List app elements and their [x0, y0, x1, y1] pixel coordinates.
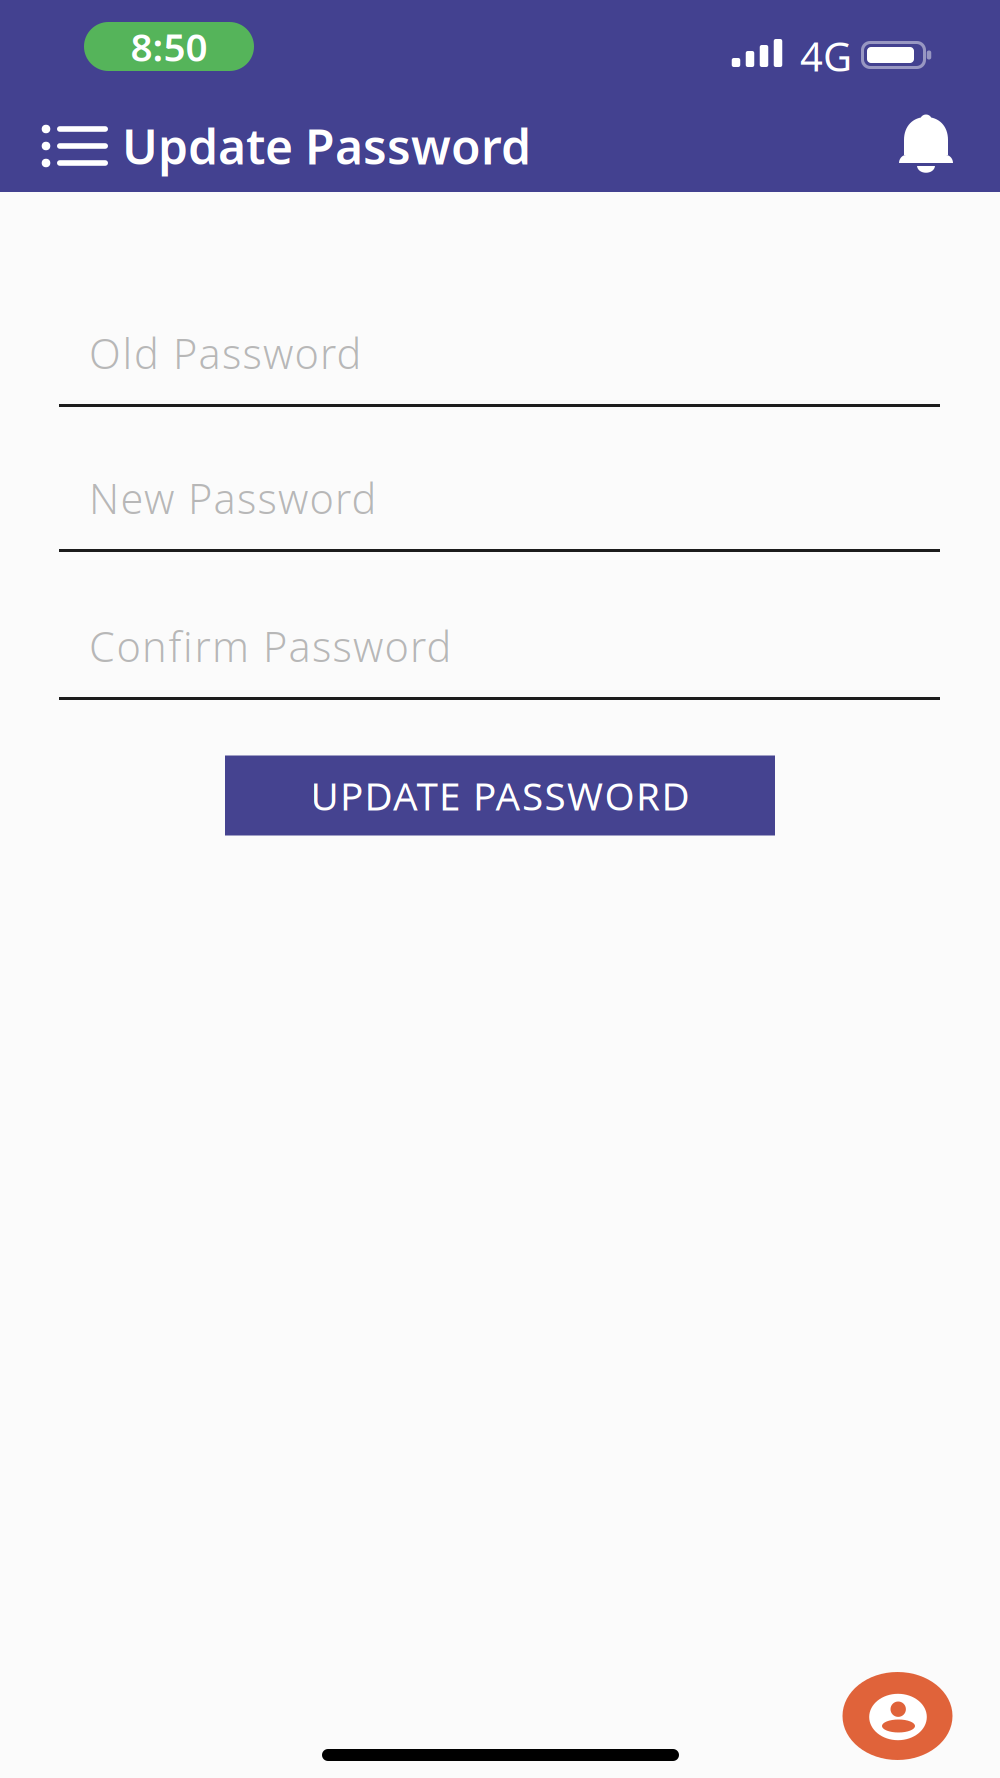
staticText: Update Password [122, 114, 531, 178]
button[interactable]: Profile [842, 1672, 952, 1760]
staticText: 8:50 [130, 21, 207, 72]
staticText: Confirm Password [89, 619, 451, 673]
staticText: Old Password [89, 326, 361, 380]
staticText: New Password [89, 471, 376, 525]
staticText: 4G [800, 29, 852, 82]
button[interactable]: Menu [39, 126, 107, 165]
button[interactable]: Notifications [898, 115, 954, 175]
staticText: UPDATE PASSWORD [310, 770, 689, 821]
button[interactable]: UPDATE PASSWORD [225, 755, 775, 835]
